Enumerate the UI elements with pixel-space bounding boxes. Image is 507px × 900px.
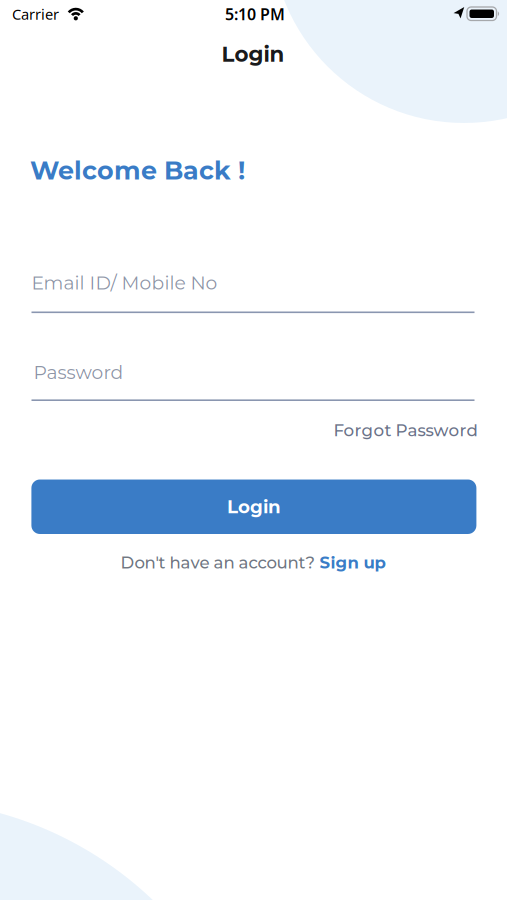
staticText: Don't have an account? xyxy=(120,552,314,573)
staticText: Sign up xyxy=(319,552,385,573)
button[interactable]: Login xyxy=(31,479,476,534)
staticText: Forgot Password xyxy=(333,420,477,440)
staticText: Password xyxy=(33,361,123,384)
staticText: Login xyxy=(227,496,281,518)
button[interactable]: Password xyxy=(31,361,474,401)
staticText: Login xyxy=(221,41,284,67)
staticText: Welcome Back ! xyxy=(30,155,245,186)
staticText: Carrier xyxy=(12,4,59,24)
button[interactable]: Forgot Password xyxy=(333,420,477,440)
button[interactable]: Email ID/ Mobile No xyxy=(31,271,474,313)
button[interactable]: Sign up xyxy=(319,552,385,573)
staticText: Email ID/ Mobile No xyxy=(31,271,217,294)
staticText: 5:10 PM xyxy=(225,3,285,25)
